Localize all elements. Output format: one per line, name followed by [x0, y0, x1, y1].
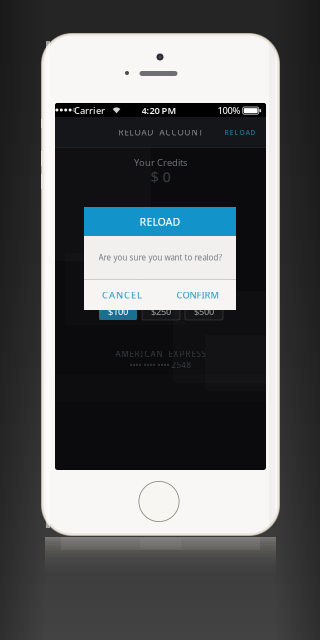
- staticText: $500: [194, 305, 214, 318]
- staticText: Carrier: [74, 104, 105, 116]
- button[interactable]: C A N C E L: [84, 280, 160, 310]
- button[interactable]: $500: [185, 303, 223, 320]
- button[interactable]: CONFIRM: [160, 280, 236, 310]
- button[interactable]: $100: [99, 303, 137, 320]
- staticText: $250: [151, 305, 171, 318]
- button[interactable]: $10: [99, 280, 137, 297]
- staticText: A M E R I C A N E X P R E S S: [115, 349, 205, 359]
- button[interactable]: $250: [142, 303, 180, 320]
- staticText: R E L O A D: [224, 128, 255, 137]
- staticText: RELOAD: [139, 214, 180, 229]
- staticText: 100%: [217, 104, 240, 116]
- staticText: C A N C E L: [102, 289, 142, 301]
- staticText: $50: [196, 282, 211, 295]
- staticText: Are you sure you want to realod?: [98, 252, 221, 263]
- button[interactable]: $50: [185, 280, 223, 297]
- staticText: 4:20 PM: [141, 104, 176, 116]
- button[interactable]: $25: [142, 280, 180, 297]
- staticText: $10: [110, 282, 125, 295]
- staticText: $100: [108, 305, 128, 318]
- staticText: Your Credits: [134, 156, 187, 169]
- staticText: R E L O A D A C C O U N T: [118, 127, 202, 138]
- staticText: $ 0: [150, 167, 170, 186]
- staticText: •••• •••• •••• 2548: [129, 360, 191, 370]
- button[interactable]: R E L O A D: [218, 117, 262, 148]
- staticText: CONFIRM: [176, 289, 219, 301]
